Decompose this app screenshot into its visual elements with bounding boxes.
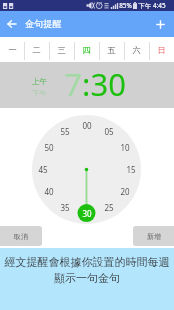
button[interactable]: 取消 (0, 226, 42, 246)
button[interactable]: Back (0, 11, 26, 37)
button[interactable]: 五 (99, 37, 124, 62)
staticText: 五 (107, 45, 116, 55)
staticText: 新增 (147, 232, 161, 241)
button[interactable]: 四 (74, 37, 99, 62)
button[interactable]: 三 (49, 37, 74, 62)
staticText: 二 (32, 45, 41, 55)
staticText: 85% (119, 1, 132, 10)
staticText: 00 (82, 120, 92, 131)
staticText: 上午 (32, 77, 47, 86)
staticText: 取消 (14, 232, 28, 241)
button[interactable]: 一 (0, 37, 24, 62)
staticText: 日 (157, 45, 166, 55)
button[interactable]: 六 (124, 37, 149, 62)
staticText: 下午 (32, 89, 47, 98)
button[interactable]: 日 (149, 37, 174, 62)
staticText: 35 (60, 202, 70, 213)
staticText: 25 (104, 202, 114, 213)
staticText: 一 (8, 45, 17, 55)
staticText: 三 (57, 45, 66, 55)
button[interactable]: 二 (24, 37, 49, 62)
staticText: 50 (44, 142, 54, 153)
button[interactable]: 新增 (133, 226, 174, 246)
button[interactable]: Add (148, 11, 174, 37)
staticText: 下午 4:45 (138, 1, 166, 10)
staticText: :30 (82, 63, 126, 105)
staticText: 05 (104, 126, 114, 137)
staticText: 45 (38, 164, 48, 175)
staticText: 55 (60, 126, 70, 137)
staticText: 六 (132, 45, 141, 55)
staticText: 經文提醒會根據你設置的時間每週 顯示一句金句 (0, 255, 174, 285)
staticText: 四 (82, 45, 91, 55)
staticText: 20 (120, 186, 130, 197)
staticText: 金句提醒 (25, 18, 62, 30)
staticText: 10 (120, 142, 130, 153)
staticText: 7 (64, 63, 82, 105)
staticText: 30 (82, 208, 92, 219)
staticText: 15 (126, 164, 136, 175)
staticText: 40 (44, 186, 54, 197)
